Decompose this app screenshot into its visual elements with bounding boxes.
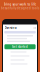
staticText: Edit	[33, 27, 35, 29]
staticText: Get started	[12, 45, 28, 48]
staticText: beautifully designed tools	[1, 6, 39, 10]
staticText: Overview	[5, 26, 17, 30]
staticText: Bring your work to life	[3, 3, 36, 6]
